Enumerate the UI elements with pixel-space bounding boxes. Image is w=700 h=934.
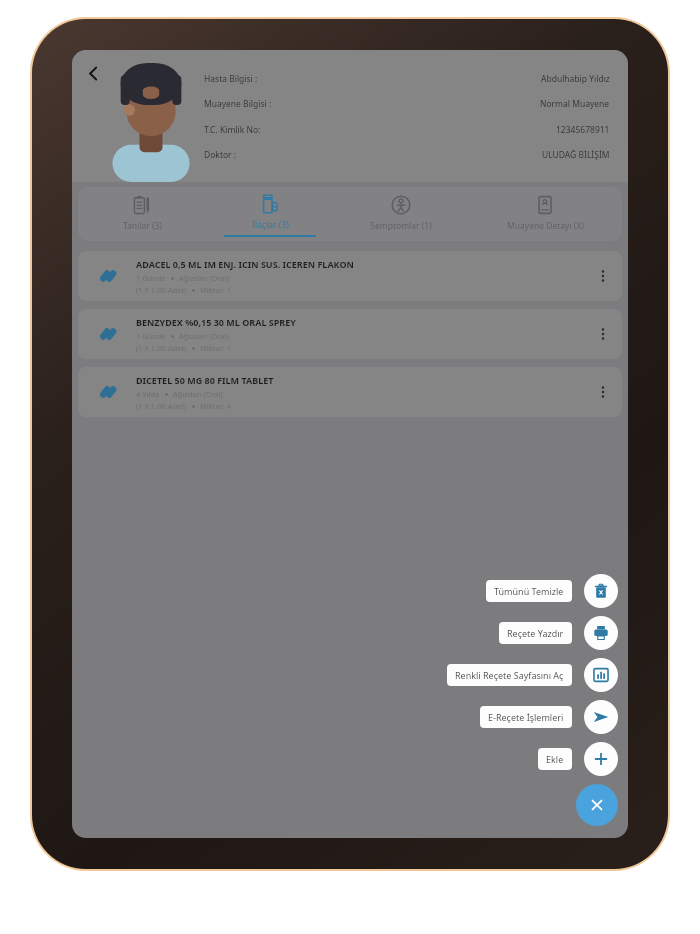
staticText: Miktar: 4 <box>200 401 232 411</box>
staticText: E-Reçete İşlemleri <box>488 711 564 723</box>
button[interactable]: DICETEL 50 MG 80 FILM TABLET <box>78 367 622 417</box>
button[interactable]: Muayene Detayı (X) <box>468 187 622 241</box>
staticText: Renkli Reçete Sayfasını Aç <box>455 669 564 681</box>
staticText: ADACEL 0,5 ML IM ENJ. ICIN SUS. ICEREN F… <box>136 258 354 270</box>
staticText: 1 Günde <box>136 331 166 341</box>
button[interactable]: E-Reçete İşlemleri <box>480 700 618 734</box>
staticText: Ağızdan (Oral) <box>179 331 229 341</box>
staticText: (1 X 1.00 Adet) <box>136 401 187 411</box>
staticText: Ekle <box>546 753 564 765</box>
staticText: 12345678911 <box>556 124 610 136</box>
staticText: Semptomlar (1) <box>370 220 432 232</box>
staticText: (1 X 1.00 Adet) <box>136 343 187 353</box>
button[interactable]: Tanılar (3) <box>78 187 206 241</box>
staticText: Miktar: 1 <box>200 285 232 295</box>
staticText: Normal Muayene <box>540 98 610 110</box>
button[interactable]: BENZYDEX %0,15 30 ML ORAL SPREY <box>78 309 622 359</box>
staticText: Doktor : <box>204 149 237 161</box>
button[interactable]: Close menu <box>576 784 618 826</box>
button[interactable]: ADACEL 0,5 ML IM ENJ. ICIN SUS. ICEREN F… <box>78 251 622 301</box>
button[interactable]: Tümünü Temizle <box>486 574 618 608</box>
staticText: Ağızdan (Oral) <box>173 389 223 399</box>
staticText: (1 X 1.00 Adet) <box>136 285 187 295</box>
staticText: 4 Yılda <box>136 389 160 399</box>
staticText: İlaçlar (3) <box>252 219 289 231</box>
button[interactable]: İlaçlar (3) <box>206 187 334 241</box>
staticText: Abdulhabip Yıldız <box>541 73 610 85</box>
staticText: Muayene Bilgisi : <box>204 98 272 110</box>
staticText: Hasta Bilgisi : <box>204 73 258 85</box>
staticText: Muayene Detayı (X) <box>507 220 584 232</box>
button[interactable]: Semptomlar (1) <box>334 187 468 241</box>
staticText: T.C. Kimlik No: <box>204 124 261 136</box>
staticText: ULUDAĞ BİLİŞİM <box>542 149 610 161</box>
staticText: Tanılar (3) <box>123 220 162 232</box>
staticText: Ağızdan (Oral) <box>179 273 229 283</box>
button[interactable]: Ekle <box>538 742 618 776</box>
staticText: BENZYDEX %0,15 30 ML ORAL SPREY <box>136 316 296 328</box>
button[interactable]: More options <box>590 379 616 405</box>
staticText: Miktar: 1 <box>200 343 232 353</box>
staticText: 1 Günde <box>136 273 166 283</box>
button[interactable]: Back <box>76 56 110 90</box>
button[interactable]: More options <box>590 321 616 347</box>
staticText: DICETEL 50 MG 80 FILM TABLET <box>136 374 274 386</box>
button[interactable]: Reçete Yazdır <box>499 616 618 650</box>
button[interactable]: More options <box>590 263 616 289</box>
button[interactable]: Renkli Reçete Sayfasını Aç <box>447 658 618 692</box>
staticText: Reçete Yazdır <box>507 627 564 639</box>
staticText: Tümünü Temizle <box>494 585 564 597</box>
